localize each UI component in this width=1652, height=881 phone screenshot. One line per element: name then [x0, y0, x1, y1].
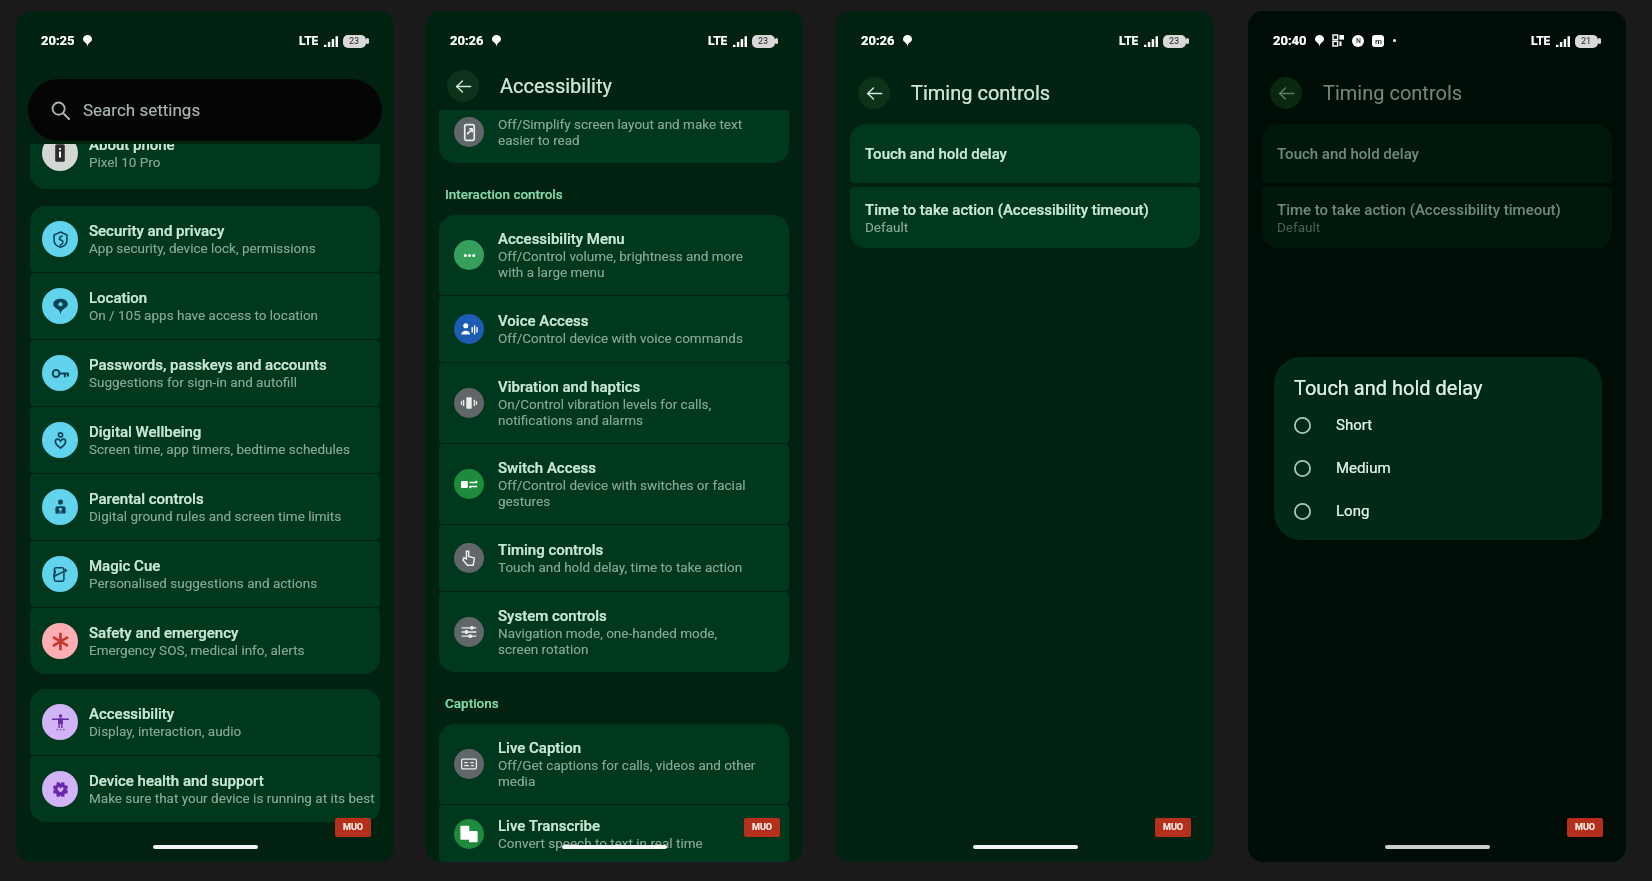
button[interactable]: Passwords, passkeys and accounts [30, 340, 380, 406]
staticText: MUO [343, 822, 364, 833]
button[interactable]: Device health and support [30, 756, 380, 822]
staticText: Short [1336, 416, 1373, 434]
staticText: Device health and support [89, 772, 264, 790]
staticText: Touch and hold delay [1277, 145, 1419, 163]
staticText: Off/Simplify screen layout and make text… [498, 116, 743, 149]
staticText: Live Transcribe [498, 817, 600, 835]
staticText: On / 105 apps have access to location [89, 307, 319, 323]
button[interactable]: Medium [1294, 459, 1602, 477]
button[interactable]: Accessibility [30, 689, 380, 755]
staticText: 20:40 [1273, 33, 1307, 48]
staticText: Time to take action (Accessibility timeo… [1277, 201, 1561, 219]
button[interactable]: Magic Cue [30, 541, 380, 607]
staticText: Parental controls [89, 490, 204, 508]
staticText: Accessibility [89, 705, 175, 723]
button[interactable]: Switch Access [439, 444, 789, 524]
staticText: Touch and hold delay [1294, 376, 1483, 399]
staticText: System controls [498, 607, 607, 625]
button[interactable]: Live Transcribe [439, 805, 789, 862]
staticText: Make sure that your device is running at… [89, 790, 375, 806]
button[interactable]: Back [1270, 77, 1302, 109]
staticText: N [1356, 37, 1361, 45]
button[interactable]: Search settings [28, 79, 382, 141]
staticText: App security, device lock, permissions [89, 240, 316, 256]
button[interactable]: Live Caption [439, 724, 789, 804]
button[interactable]: Touch and hold delay [850, 124, 1200, 183]
staticText: Display, interaction, audio [89, 723, 242, 739]
staticText: Screen time, app timers, bedtime schedul… [89, 441, 350, 457]
staticText: LTE [299, 34, 319, 48]
button[interactable]: Digital Wellbeing [30, 407, 380, 473]
staticText: Long [1336, 502, 1370, 520]
staticText: MUO [1575, 822, 1596, 833]
staticText: 23 [349, 36, 360, 47]
staticText: Touch and hold delay, time to take actio… [498, 559, 743, 575]
staticText: Default [865, 219, 909, 235]
staticText: Emergency SOS, medical info, alerts [89, 642, 305, 658]
staticText: Default [1277, 219, 1321, 235]
button[interactable]: Back [858, 77, 890, 109]
button[interactable]: Short [1294, 416, 1602, 434]
button[interactable]: Timing controls [439, 525, 789, 591]
staticText: Digital Wellbeing [89, 423, 202, 441]
staticText: Personalised suggestions and actions [89, 575, 318, 591]
staticText: Security and privacy [89, 222, 225, 240]
staticText: Timing controls [911, 81, 1051, 104]
staticText: m [1375, 37, 1382, 46]
staticText: 23 [758, 36, 769, 47]
staticText: 21 [1581, 36, 1592, 47]
staticText: 20:25 [41, 33, 75, 48]
staticText: Interaction controls [445, 186, 563, 202]
button[interactable]: System controls [439, 592, 789, 672]
button[interactable]: Back [447, 70, 479, 102]
staticText: Off/Get captions for calls, videos and o… [498, 757, 756, 789]
staticText: Magic Cue [89, 557, 161, 575]
staticText: Convert speech to text in real time [498, 835, 703, 851]
staticText: Off/Control device with voice commands [498, 330, 743, 346]
staticText: Off/Control device with switches or faci… [498, 477, 746, 509]
staticText: Search settings [83, 100, 201, 120]
button[interactable]: Vibration and haptics [439, 363, 789, 443]
button[interactable]: Time to take action (Accessibility timeo… [850, 187, 1200, 248]
staticText: LTE [708, 34, 728, 48]
button[interactable]: Accessibility Menu [439, 215, 789, 295]
button[interactable]: Parental controls [30, 474, 380, 540]
staticText: Live Caption [498, 739, 582, 757]
staticText: Accessibility Menu [498, 230, 625, 248]
staticText: Accessibility [500, 74, 612, 97]
staticText: Digital ground rules and screen time lim… [89, 508, 342, 524]
staticText: Safety and emergency [89, 624, 239, 642]
staticText: Captions [445, 695, 499, 711]
staticText: Passwords, passkeys and accounts [89, 356, 327, 374]
staticText: LTE [1119, 34, 1139, 48]
staticText: Timing controls [1323, 81, 1463, 104]
staticText: Medium [1336, 459, 1391, 477]
staticText: Off/Control volume, brightness and more … [498, 248, 743, 280]
staticText: LTE [1531, 34, 1551, 48]
button[interactable]: Off/Simplify screen layout and make text… [439, 110, 789, 163]
staticText: Time to take action (Accessibility timeo… [865, 201, 1149, 219]
staticText: On/Control vibration levels for calls, n… [498, 396, 712, 428]
staticText: About phone [89, 144, 175, 154]
staticText: Pixel 10 Pro [89, 154, 161, 170]
staticText: Vibration and haptics [498, 378, 641, 396]
staticText: Switch Access [498, 459, 597, 477]
staticText: Timing controls [498, 541, 604, 559]
button[interactable]: Voice Access [439, 296, 789, 362]
staticText: MUO [752, 822, 773, 833]
staticText: Location [89, 289, 148, 307]
staticText: 20:26 [861, 33, 895, 48]
button[interactable]: Long [1294, 502, 1602, 520]
staticText: Suggestions for sign-in and autofill [89, 374, 297, 390]
staticText: Voice Access [498, 312, 589, 330]
button[interactable]: Location [30, 273, 380, 339]
staticText: 20:26 [450, 33, 484, 48]
button[interactable]: Security and privacy [30, 206, 380, 272]
staticText: 23 [1169, 36, 1180, 47]
staticText: Navigation mode, one-handed mode, screen… [498, 625, 718, 657]
button[interactable]: Safety and emergency [30, 608, 380, 674]
staticText: MUO [1163, 822, 1184, 833]
staticText: Touch and hold delay [865, 145, 1007, 163]
